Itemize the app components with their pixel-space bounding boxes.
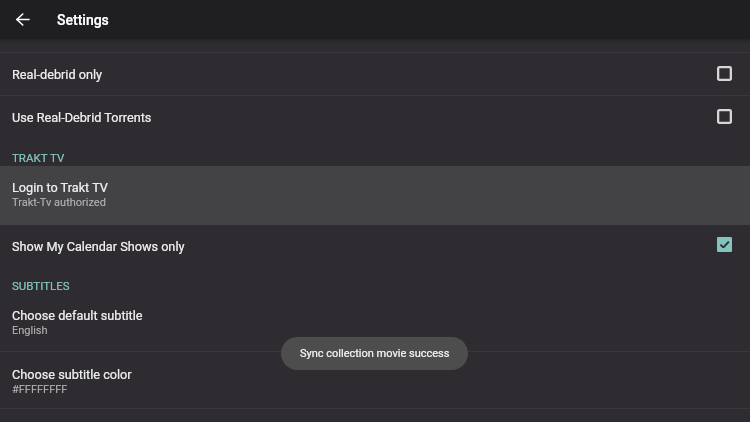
staticText: Show My Calendar Shows only xyxy=(12,239,185,254)
staticText: TRAKT TV xyxy=(12,151,65,164)
staticText: Use Real-Debrid Torrents xyxy=(12,110,152,125)
staticText: Trakt-Tv authorized xyxy=(12,196,106,209)
staticText: Login to Trakt TV xyxy=(12,180,108,195)
staticText: Real-debrid only xyxy=(12,67,103,82)
staticText: #FFFFFFFF xyxy=(12,383,68,396)
button[interactable]: Use Real-Debrid Torrents xyxy=(0,96,750,138)
staticText: Choose default subtitle xyxy=(12,308,143,323)
staticText: SUBTITLES xyxy=(12,279,70,292)
staticText: English xyxy=(12,324,48,337)
button[interactable]: Choose default subtitle xyxy=(0,294,750,351)
staticText: Sync collection movie success xyxy=(300,347,450,360)
button[interactable]: Real-debrid only xyxy=(0,53,750,95)
staticText: Settings xyxy=(57,12,109,28)
staticText: Choose subtitle color xyxy=(12,367,132,382)
button[interactable]: Login to Trakt TV xyxy=(0,166,750,225)
button[interactable]: Show My Calendar Shows only xyxy=(0,225,750,267)
button[interactable]: Choose subtitle color xyxy=(0,352,750,408)
button[interactable]: Back xyxy=(4,1,40,37)
